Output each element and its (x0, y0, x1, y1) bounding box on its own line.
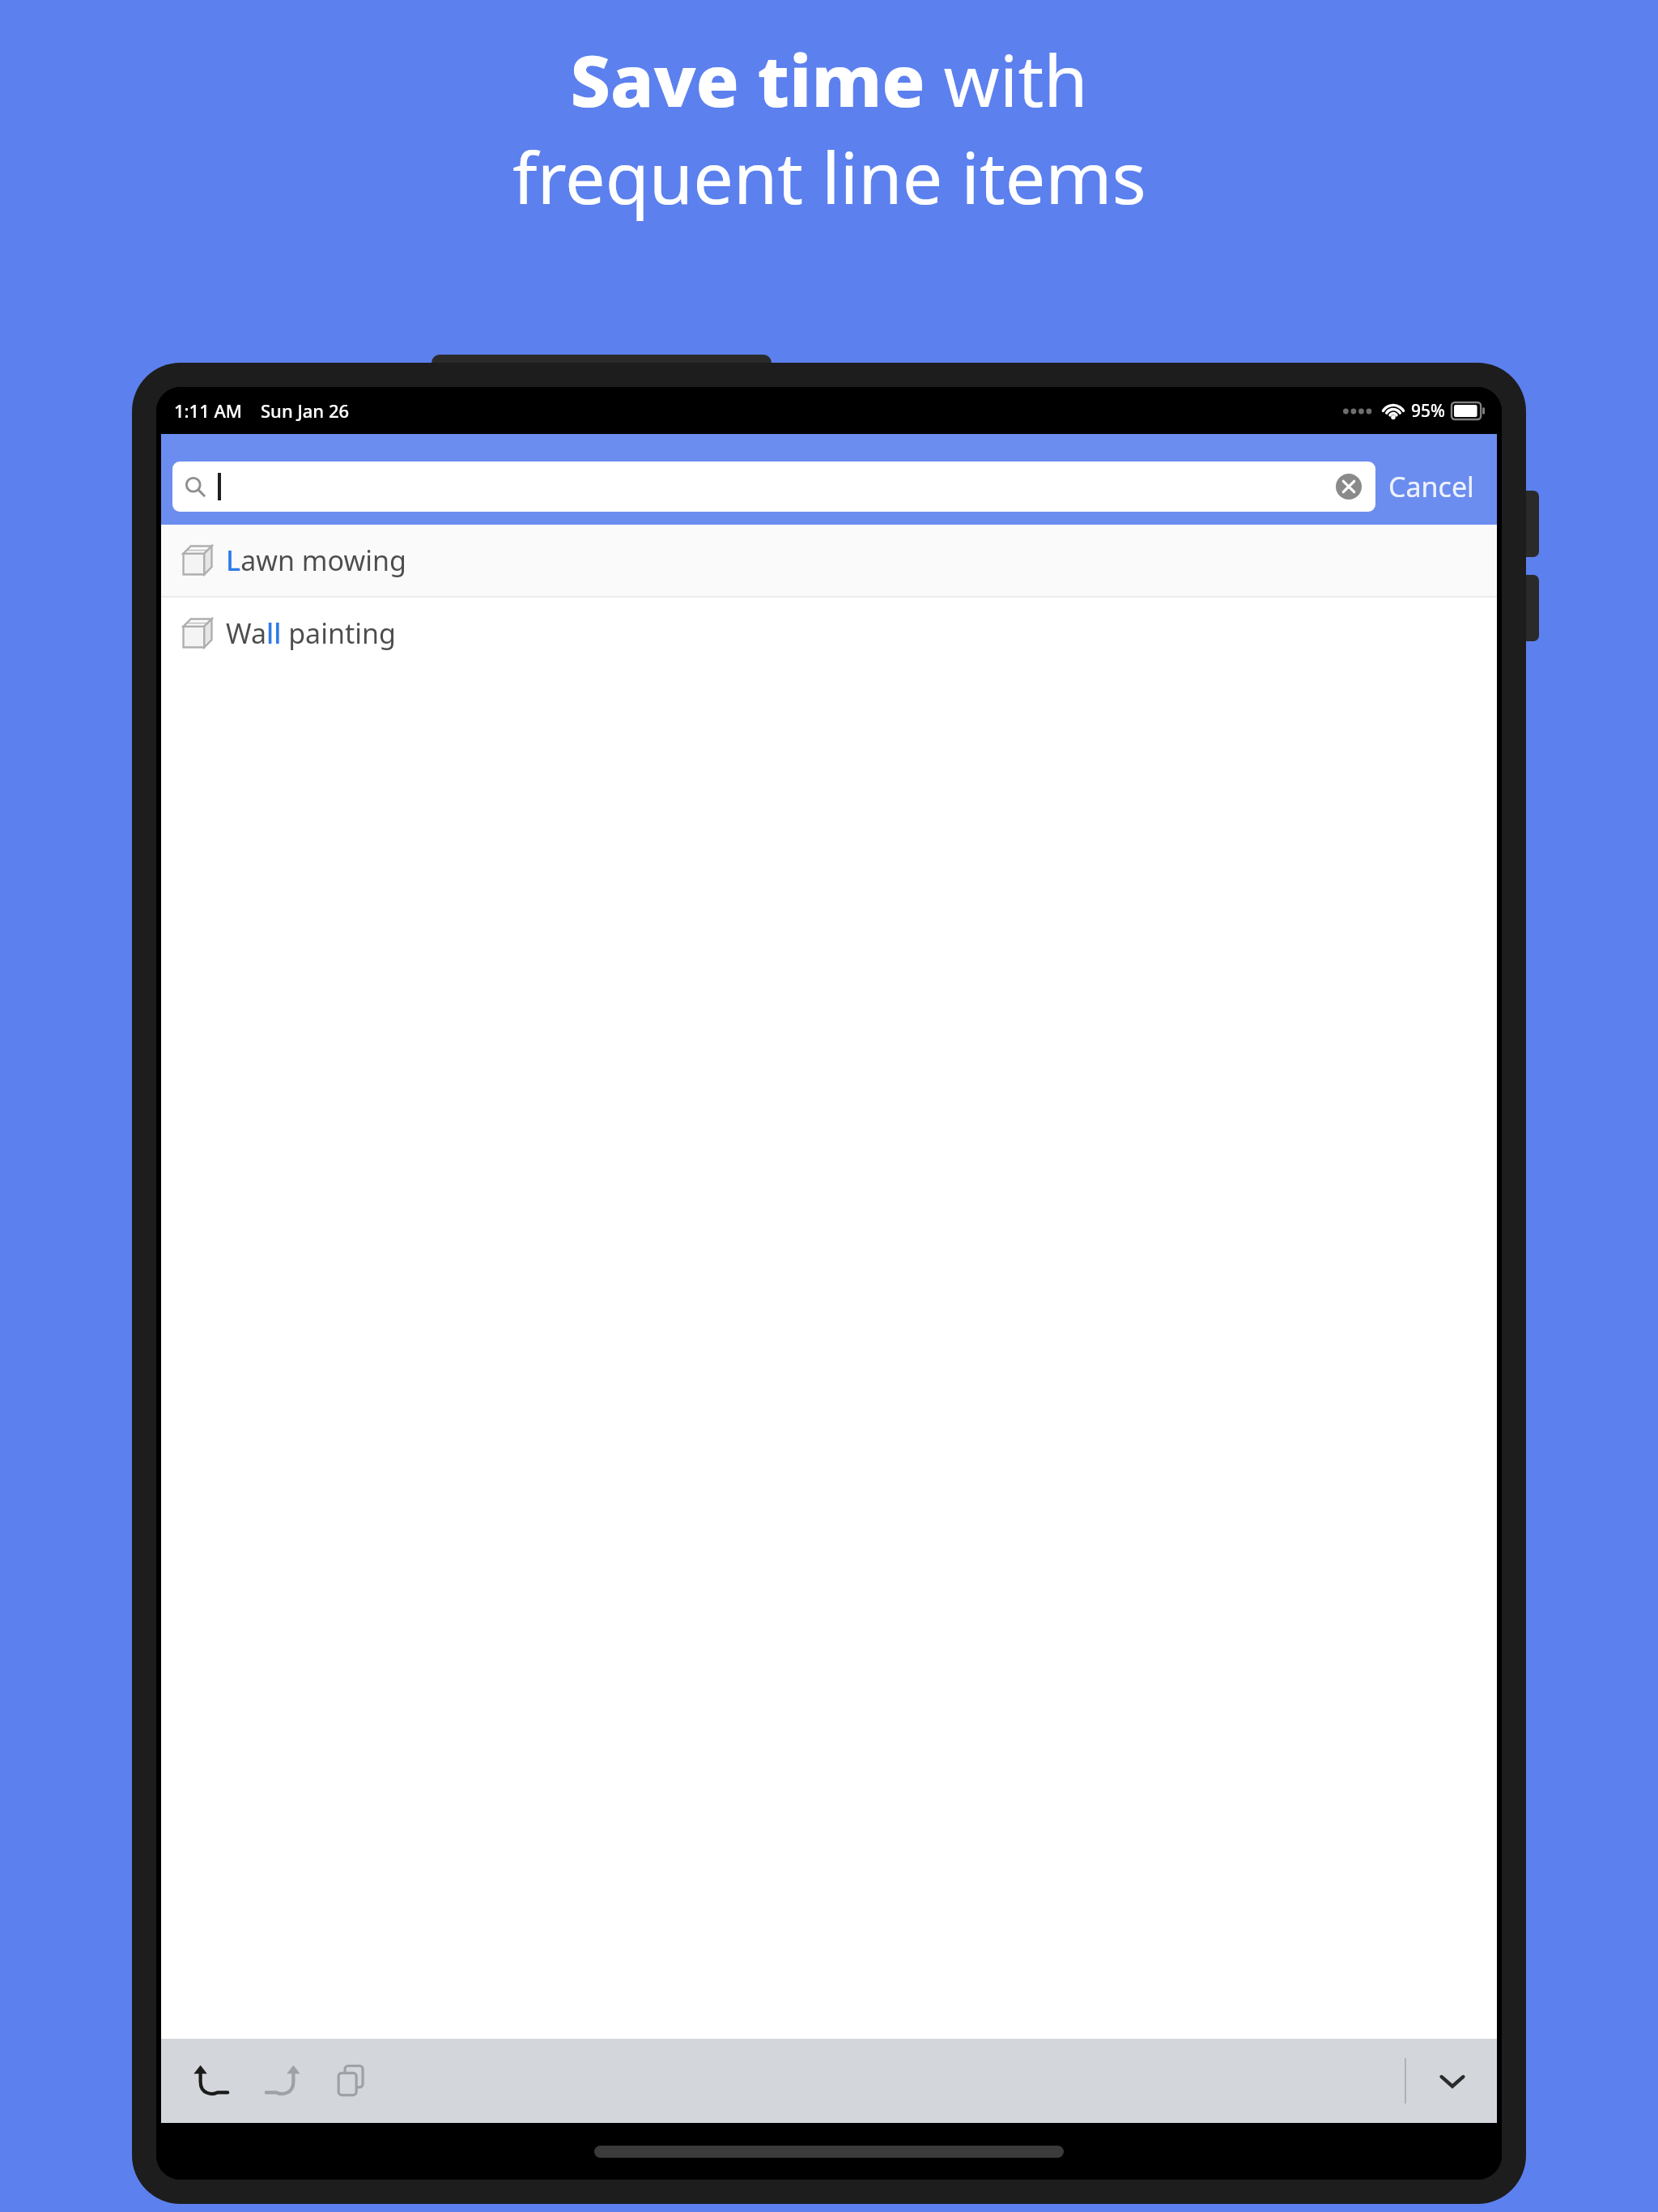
button[interactable]: Paste (325, 2054, 378, 2108)
staticText: Lawn mowing (226, 542, 406, 579)
staticText: Save time with (570, 31, 1088, 128)
button[interactable]: Redo (255, 2054, 308, 2108)
button[interactable]: Wall painting (161, 598, 1497, 669)
staticText: frequent line items (512, 128, 1146, 225)
button[interactable]: Clear search (1333, 471, 1364, 502)
staticText: Sun Jan 26 (261, 398, 350, 423)
staticText: 1:11 AM (174, 398, 243, 423)
staticText: Wall painting (226, 615, 396, 652)
button[interactable]: Undo (185, 2054, 239, 2108)
other: Search (184, 475, 206, 498)
button[interactable]: Lawn mowing (161, 525, 1497, 596)
button[interactable]: Cancel (1375, 460, 1487, 513)
staticText: Cancel (1388, 468, 1474, 505)
button[interactable]: Hide keyboard (1426, 2054, 1479, 2108)
staticText: 95% (1411, 399, 1445, 423)
button[interactable]: Search (172, 462, 1375, 512)
